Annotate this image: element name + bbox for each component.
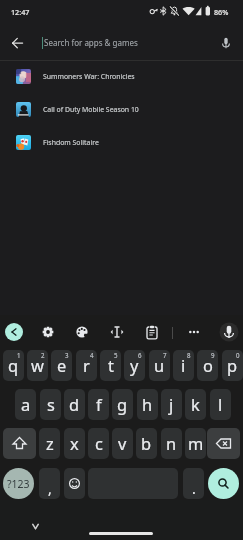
button[interactable]: Backspace xyxy=(207,428,240,459)
staticText: 2 xyxy=(41,351,45,359)
staticText: 3 xyxy=(65,351,69,359)
button[interactable]: Text editing xyxy=(106,321,128,343)
button[interactable]: Shift xyxy=(3,428,36,459)
button[interactable]: ?123 xyxy=(3,468,34,499)
staticText: 5 xyxy=(114,351,118,359)
button[interactable]: Fishdom Solitaire xyxy=(0,126,243,159)
button[interactable]: x xyxy=(64,428,85,459)
staticText: 7 xyxy=(163,351,167,359)
staticText: p xyxy=(227,354,238,376)
button[interactable]: Voice input xyxy=(218,321,240,343)
button[interactable]: Search xyxy=(208,468,239,499)
button[interactable]: m xyxy=(185,428,206,459)
button[interactable]: s xyxy=(40,389,61,420)
button[interactable]: n xyxy=(161,428,182,459)
staticText: f xyxy=(96,393,102,415)
staticText: r xyxy=(83,354,90,376)
staticText: q xyxy=(8,354,19,376)
button[interactable]: t xyxy=(100,350,121,381)
button[interactable]: a xyxy=(15,389,36,420)
button[interactable]: j xyxy=(161,389,182,420)
button[interactable]: o xyxy=(197,350,218,381)
button[interactable]: Emoji xyxy=(64,468,85,499)
staticText: 12:47 xyxy=(11,7,30,17)
button[interactable]: e xyxy=(51,350,72,381)
button[interactable]: More options xyxy=(183,321,205,343)
staticText: h xyxy=(142,393,153,415)
staticText: 0 xyxy=(236,351,240,359)
staticText: y xyxy=(130,354,139,376)
staticText: a xyxy=(21,393,31,415)
button[interactable]: u xyxy=(149,350,170,381)
button[interactable]: f xyxy=(88,389,109,420)
staticText: g xyxy=(117,393,128,415)
button[interactable]: g xyxy=(112,389,133,420)
button[interactable]: q xyxy=(3,350,24,381)
staticText: b xyxy=(141,432,152,454)
staticText: w xyxy=(31,354,44,376)
staticText: Call of Duty Mobile Season 10 xyxy=(43,105,139,114)
staticText: l xyxy=(218,393,223,415)
button[interactable]: v xyxy=(112,428,133,459)
staticText: u xyxy=(154,354,165,376)
staticText: ?123 xyxy=(7,477,30,491)
button[interactable]: Clipboard xyxy=(141,321,163,343)
button[interactable]: d xyxy=(64,389,85,420)
button[interactable]: y xyxy=(124,350,145,381)
button[interactable]: , xyxy=(39,468,60,499)
staticText: 6 xyxy=(138,351,142,359)
staticText: 8 xyxy=(187,351,191,359)
button[interactable]: Themes xyxy=(71,321,93,343)
button[interactable]: Collapse toolbar xyxy=(5,323,23,341)
staticText: e xyxy=(57,354,67,376)
button[interactable]: z xyxy=(39,428,60,459)
button[interactable]: Voice search xyxy=(214,31,238,55)
staticText: o xyxy=(203,354,213,376)
button[interactable]: Back xyxy=(5,31,29,55)
staticText: d xyxy=(69,393,80,415)
button[interactable]: Settings xyxy=(37,321,59,343)
staticText: z xyxy=(46,432,54,454)
button[interactable]: l xyxy=(210,389,231,420)
button[interactable]: Summoners War: Chronicles xyxy=(0,60,243,93)
button[interactable]: h xyxy=(137,389,158,420)
staticText: , xyxy=(48,479,52,498)
staticText: v xyxy=(118,432,127,454)
staticText: i xyxy=(181,354,186,376)
button[interactable]: p xyxy=(222,350,243,381)
button[interactable]: . xyxy=(183,468,204,499)
button[interactable]: w xyxy=(27,350,48,381)
button[interactable]: Call of Duty Mobile Season 10 xyxy=(0,93,243,126)
staticText: 4 xyxy=(90,351,94,359)
staticText: t xyxy=(108,354,114,376)
staticText: j xyxy=(169,393,174,415)
button[interactable]: k xyxy=(185,389,206,420)
staticText: s xyxy=(47,393,55,415)
button[interactable]: c xyxy=(88,428,109,459)
staticText: c xyxy=(95,432,103,454)
staticText: Fishdom Solitaire xyxy=(43,138,99,147)
button[interactable]: i xyxy=(173,350,194,381)
staticText: . xyxy=(192,479,196,498)
button[interactable]: r xyxy=(76,350,97,381)
button[interactable]: Hide keyboard xyxy=(25,516,46,537)
staticText: m xyxy=(188,432,204,454)
staticText: n xyxy=(166,432,177,454)
staticText: 1 xyxy=(17,351,21,359)
staticText: 9 xyxy=(211,351,215,359)
staticText: k xyxy=(191,393,200,415)
staticText: x xyxy=(70,432,79,454)
staticText: Search for apps & games xyxy=(44,37,138,48)
staticText: 86% xyxy=(214,7,229,17)
button[interactable]: b xyxy=(136,428,157,459)
staticText: Summoners War: Chronicles xyxy=(43,72,135,81)
